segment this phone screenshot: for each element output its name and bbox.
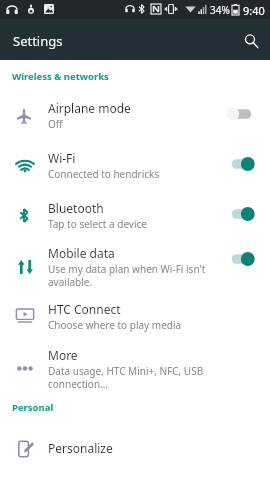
button[interactable]: Mobile data (0, 235, 270, 285)
staticText: More (48, 347, 78, 363)
button[interactable]: Search (239, 29, 263, 53)
button[interactable]: More (0, 337, 270, 387)
staticText: Data usage, HTC Mini+, NFC, USB (48, 364, 204, 378)
staticText: Settings (13, 32, 63, 50)
staticText: Airplane mode (48, 100, 131, 116)
staticText: 34% (210, 3, 230, 17)
staticText: Mobile data (48, 245, 115, 261)
button[interactable]: Wi-Fi toggle (224, 153, 256, 175)
button[interactable]: Bluetooth (0, 190, 270, 228)
button[interactable]: Bluetooth toggle (224, 203, 256, 225)
staticText: 9:40 (243, 3, 265, 18)
staticText: Wi-Fi (48, 150, 76, 166)
staticText: Tap to select a device (48, 217, 147, 231)
button[interactable]: Airplane mode (0, 90, 270, 128)
staticText: Use my data plan when Wi-Fi isn't (48, 262, 206, 276)
button[interactable]: Wi-Fi (0, 140, 270, 178)
staticText: Personalize (48, 440, 113, 456)
staticText: available. (48, 275, 93, 289)
staticText: Personal (12, 401, 54, 414)
staticText: connection… (48, 377, 108, 391)
staticText: Connected to hendricks (48, 167, 160, 181)
staticText: Bluetooth (48, 200, 104, 216)
button[interactable]: Airplane mode toggle (224, 103, 256, 125)
button[interactable]: HTC Connect (0, 291, 270, 329)
button[interactable]: Mobile data toggle (224, 248, 256, 270)
button[interactable]: Personalize (0, 430, 270, 458)
staticText: HTC Connect (48, 301, 121, 317)
staticText: Wireless & networks (12, 70, 109, 83)
staticText: Choose where to play media (48, 318, 182, 332)
staticText: Off (48, 117, 63, 131)
